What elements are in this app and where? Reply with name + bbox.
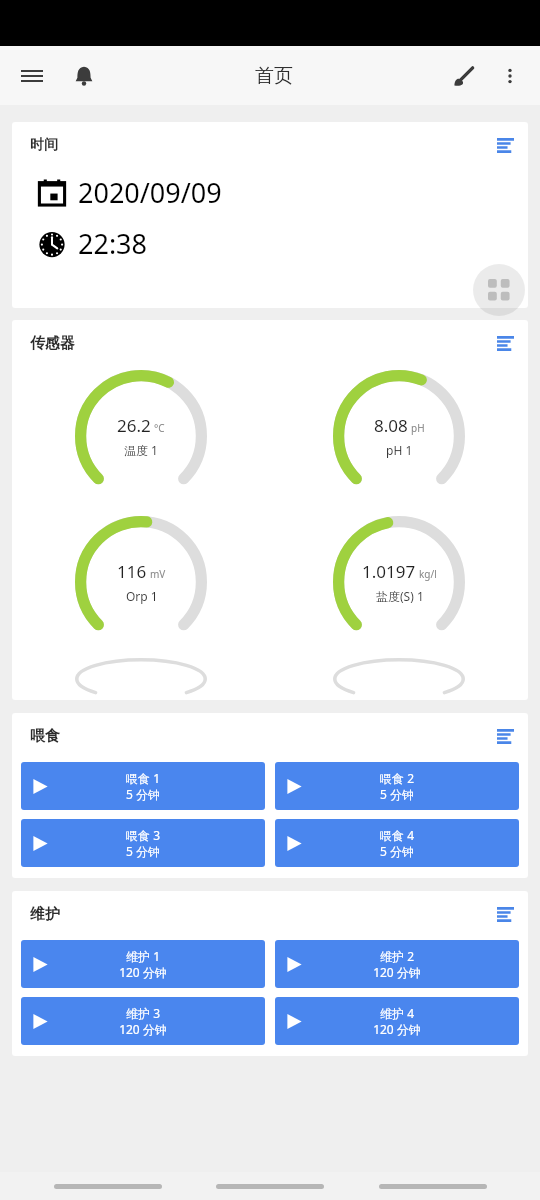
button[interactable]: Sort <box>488 719 522 753</box>
button[interactable]: 维护 4 <box>275 997 519 1045</box>
staticText: 首页 <box>255 64 293 88</box>
staticText: 维护 2 <box>380 948 414 964</box>
staticText: 盐度(S) 1 <box>376 588 424 604</box>
staticText: 传感器 <box>30 334 75 353</box>
staticText: 1.0197 <box>362 560 416 583</box>
staticText: 喂食 1 <box>126 770 160 786</box>
button[interactable]: Recents <box>378 1175 488 1197</box>
button[interactable]: 维护 3 <box>21 997 265 1045</box>
button[interactable]: More options <box>488 54 532 98</box>
button[interactable]: 喂食 4 <box>275 819 519 867</box>
button[interactable]: Notifications <box>60 52 108 100</box>
staticText: 维护 3 <box>126 1005 160 1021</box>
button[interactable]: Sort <box>488 128 522 162</box>
button[interactable]: 喂食 2 <box>275 762 519 810</box>
button[interactable]: 1.0197 <box>270 512 528 652</box>
staticText: 120 分钟 <box>119 1021 167 1037</box>
staticText: 5 分钟 <box>380 843 414 859</box>
staticText: 维护 1 <box>126 948 160 964</box>
button[interactable] <box>12 658 270 700</box>
button[interactable]: 维护 1 <box>21 940 265 988</box>
staticText: 喂食 2 <box>380 770 414 786</box>
staticText: 5 分钟 <box>380 786 414 802</box>
staticText: pH <box>411 421 425 435</box>
staticText: 维护 4 <box>380 1005 414 1021</box>
staticText: kg/l <box>419 567 437 581</box>
staticText: 22:38 <box>78 225 148 262</box>
staticText: °C <box>154 421 165 435</box>
staticText: 维护 <box>30 905 60 924</box>
staticText: pH 1 <box>386 442 413 458</box>
button[interactable]: 维护 2 <box>275 940 519 988</box>
staticText: 时间 <box>30 136 58 154</box>
staticText: 5 分钟 <box>126 786 160 802</box>
button[interactable]: 喂食 1 <box>21 762 265 810</box>
button[interactable]: Sort <box>488 326 522 360</box>
button[interactable]: Brush <box>440 52 488 100</box>
button[interactable] <box>270 658 528 700</box>
staticText: 116 <box>117 560 147 583</box>
button[interactable]: 喂食 3 <box>21 819 265 867</box>
staticText: 120 分钟 <box>119 964 167 980</box>
staticText: Orp 1 <box>126 588 158 604</box>
button[interactable]: 116 <box>12 512 270 652</box>
staticText: mV <box>150 567 166 581</box>
staticText: 120 分钟 <box>373 964 421 980</box>
staticText: 喂食 <box>30 727 60 746</box>
button[interactable]: Apps grid <box>473 264 525 316</box>
button[interactable]: Sort <box>488 897 522 931</box>
staticText: 8.08 <box>374 414 408 437</box>
button[interactable]: 26.2 <box>12 366 270 506</box>
button[interactable]: Menu <box>8 52 56 100</box>
button[interactable]: Home <box>215 1175 325 1197</box>
staticText: 5 分钟 <box>126 843 160 859</box>
button[interactable]: 8.08 <box>270 366 528 506</box>
button[interactable]: Back <box>53 1175 163 1197</box>
staticText: 喂食 3 <box>126 827 160 843</box>
staticText: 喂食 4 <box>380 827 414 843</box>
staticText: 26.2 <box>117 414 151 437</box>
staticText: 温度 1 <box>124 442 158 458</box>
staticText: 120 分钟 <box>373 1021 421 1037</box>
staticText: 2020/09/09 <box>78 174 222 211</box>
